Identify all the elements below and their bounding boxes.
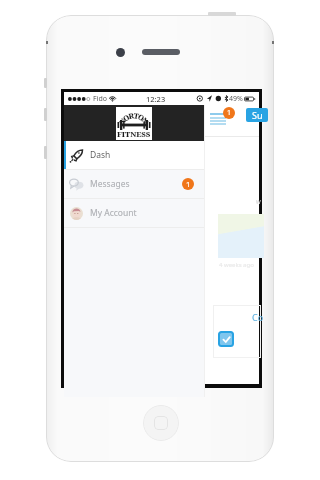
staticText: 4 weeks ago	[219, 261, 254, 269]
staticText: Messages	[90, 178, 130, 190]
button[interactable]: Completed	[218, 331, 234, 347]
staticText: 1	[227, 108, 232, 118]
staticText: W	[256, 199, 261, 206]
staticText: Co	[252, 311, 264, 323]
staticText: 12:23	[146, 94, 166, 104]
staticText: 49%	[229, 94, 243, 104]
button[interactable]: My Account	[64, 199, 204, 227]
staticText: Dash	[90, 149, 111, 161]
button[interactable]: Messages	[64, 170, 204, 198]
button[interactable]: Menu	[207, 110, 229, 127]
staticText: FITNESS	[117, 129, 151, 139]
staticText: Fido	[93, 94, 107, 104]
staticText: Su	[252, 109, 263, 121]
button[interactable]: Dash	[64, 141, 204, 169]
staticText: 1	[186, 179, 191, 189]
staticText: My Account	[90, 207, 137, 219]
button[interactable]: Su	[246, 108, 268, 122]
